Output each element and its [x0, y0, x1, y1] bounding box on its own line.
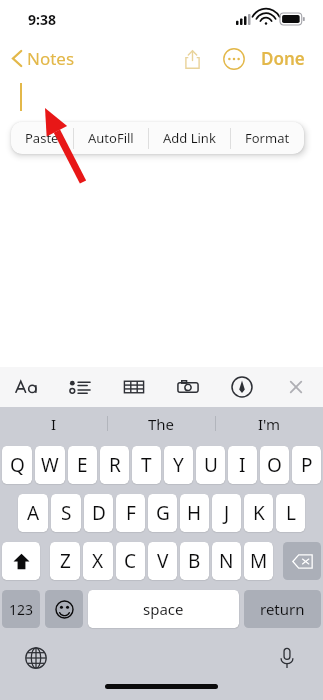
- button[interactable]: Z: [50, 542, 80, 580]
- staticText: H: [187, 500, 202, 526]
- staticText: V: [157, 548, 169, 574]
- button[interactable]: I: [0, 407, 107, 440]
- staticText: 123: [9, 600, 34, 619]
- staticText: K: [253, 500, 265, 526]
- button[interactable]: J: [212, 494, 241, 532]
- staticText: M: [250, 548, 268, 574]
- staticText: I: [239, 452, 246, 478]
- button[interactable]: P: [292, 446, 321, 484]
- button[interactable]: Close toolbar: [269, 367, 323, 407]
- staticText: W: [41, 452, 59, 478]
- button[interactable]: Insert table: [107, 367, 161, 407]
- button[interactable]: Format: [231, 122, 304, 154]
- button[interactable]: E: [68, 446, 97, 484]
- button[interactable]: A: [18, 494, 48, 532]
- staticText: G: [156, 500, 170, 526]
- button[interactable]: C: [116, 542, 145, 580]
- staticText: Q: [10, 452, 25, 478]
- button[interactable]: R: [100, 446, 129, 484]
- staticText: U: [204, 452, 218, 478]
- button[interactable]: More options: [217, 42, 251, 76]
- button[interactable]: W: [35, 446, 65, 484]
- button[interactable]: Emoji: [45, 590, 83, 628]
- button[interactable]: N: [212, 542, 241, 580]
- button[interactable]: Share: [175, 42, 209, 76]
- staticText: D: [92, 500, 106, 526]
- button[interactable]: Shift: [2, 542, 40, 580]
- button[interactable]: S: [51, 494, 81, 532]
- staticText: A: [27, 500, 40, 526]
- button[interactable]: M: [244, 542, 273, 580]
- staticText: L: [286, 500, 296, 526]
- button[interactable]: T: [132, 446, 161, 484]
- staticText: N: [219, 548, 234, 574]
- button[interactable]: The: [107, 407, 215, 440]
- staticText: F: [126, 500, 136, 526]
- button[interactable]: H: [180, 494, 209, 532]
- staticText: O: [267, 452, 282, 478]
- staticText: P: [301, 452, 313, 478]
- staticText: X: [92, 548, 104, 574]
- button[interactable]: space: [88, 590, 239, 628]
- staticText: The: [148, 414, 175, 434]
- staticText: B: [188, 548, 201, 574]
- staticText: I'm: [258, 414, 281, 434]
- staticText: 9:38: [28, 10, 56, 29]
- button[interactable]: Markup: [215, 367, 269, 407]
- staticText: space: [143, 599, 184, 619]
- staticText: E: [77, 452, 88, 478]
- button[interactable]: Checklist: [53, 367, 107, 407]
- button[interactable]: Text format: [0, 367, 53, 407]
- staticText: Format: [245, 129, 290, 147]
- button[interactable]: D: [84, 494, 113, 532]
- staticText: T: [141, 452, 152, 478]
- button[interactable]: G: [148, 494, 177, 532]
- button[interactable]: return: [244, 590, 321, 628]
- button[interactable]: X: [83, 542, 113, 580]
- button[interactable]: B: [180, 542, 209, 580]
- button[interactable]: I: [228, 446, 257, 484]
- staticText: Notes: [27, 47, 75, 70]
- button[interactable]: L: [276, 494, 305, 532]
- button[interactable]: Q: [2, 446, 32, 484]
- button[interactable]: Switch keyboard: [20, 642, 52, 674]
- staticText: J: [224, 500, 230, 526]
- staticText: return: [260, 599, 305, 619]
- button[interactable]: AutoFill: [74, 122, 148, 154]
- staticText: Y: [173, 452, 184, 478]
- button[interactable]: U: [196, 446, 225, 484]
- button[interactable]: Paste: [11, 122, 73, 154]
- button[interactable]: Y: [164, 446, 193, 484]
- button[interactable]: K: [244, 494, 273, 532]
- button[interactable]: F: [116, 494, 145, 532]
- button[interactable]: Add Link: [149, 122, 230, 154]
- staticText: Z: [60, 548, 71, 574]
- button[interactable]: Dictation: [271, 642, 303, 674]
- button[interactable]: O: [260, 446, 289, 484]
- staticText: C: [124, 548, 137, 574]
- button[interactable]: 123: [2, 590, 40, 628]
- button[interactable]: Delete: [283, 542, 321, 580]
- button[interactable]: Notes: [8, 42, 79, 75]
- staticText: Add Link: [163, 129, 216, 147]
- staticText: I: [51, 414, 57, 434]
- button[interactable]: Camera: [161, 367, 215, 407]
- button[interactable]: Done: [255, 41, 311, 76]
- button[interactable]: V: [148, 542, 177, 580]
- button[interactable]: I'm: [215, 407, 323, 440]
- staticText: AutoFill: [88, 129, 134, 147]
- staticText: Paste: [25, 129, 59, 147]
- staticText: Done: [261, 47, 305, 70]
- staticText: S: [61, 500, 72, 526]
- staticText: R: [109, 452, 121, 478]
